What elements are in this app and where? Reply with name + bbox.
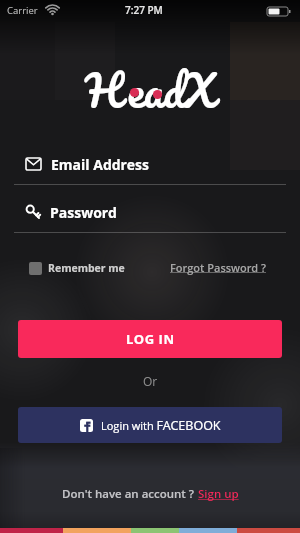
button[interactable]: Forgot Password ? xyxy=(170,260,267,275)
staticText: Or xyxy=(143,373,158,389)
staticText: LOG IN xyxy=(126,330,175,348)
staticText: Carrier xyxy=(7,4,38,17)
staticText: Remember me xyxy=(48,261,125,275)
staticText: 7:27 PM xyxy=(125,3,163,17)
button[interactable]: Remember me xyxy=(29,261,125,275)
staticText: HeadX xyxy=(85,53,215,127)
staticText: Login with FACEBOOK xyxy=(101,417,221,434)
staticText: Don't have an account ? xyxy=(62,486,198,502)
button[interactable]: Login with FACEBOOK xyxy=(18,407,282,443)
staticText: Sign up xyxy=(198,486,239,502)
button[interactable]: Don't have an account ? xyxy=(0,486,300,502)
button[interactable]: LOG IN xyxy=(18,320,282,358)
staticText: Password xyxy=(50,203,117,222)
button[interactable]: Email Address xyxy=(14,148,286,180)
staticText: Email Address xyxy=(51,155,149,174)
button[interactable]: Password xyxy=(14,196,286,228)
staticText: Forgot Password ? xyxy=(170,260,267,275)
